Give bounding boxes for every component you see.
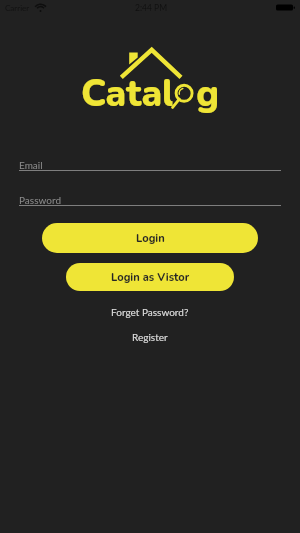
staticText: Email (19, 159, 43, 171)
button[interactable]: Login (42, 223, 258, 253)
button[interactable]: Register (132, 331, 168, 343)
staticText: Login as Vistor (111, 270, 190, 285)
staticText: Password (19, 194, 61, 206)
staticText: Catalog (0, 69, 300, 119)
staticText: Login (136, 231, 165, 246)
staticText: Carrier (5, 3, 30, 13)
button[interactable]: Login as Vistor (66, 263, 234, 291)
button[interactable]: Forget Password? (111, 306, 189, 318)
staticText: 2:44 PM (135, 3, 168, 13)
